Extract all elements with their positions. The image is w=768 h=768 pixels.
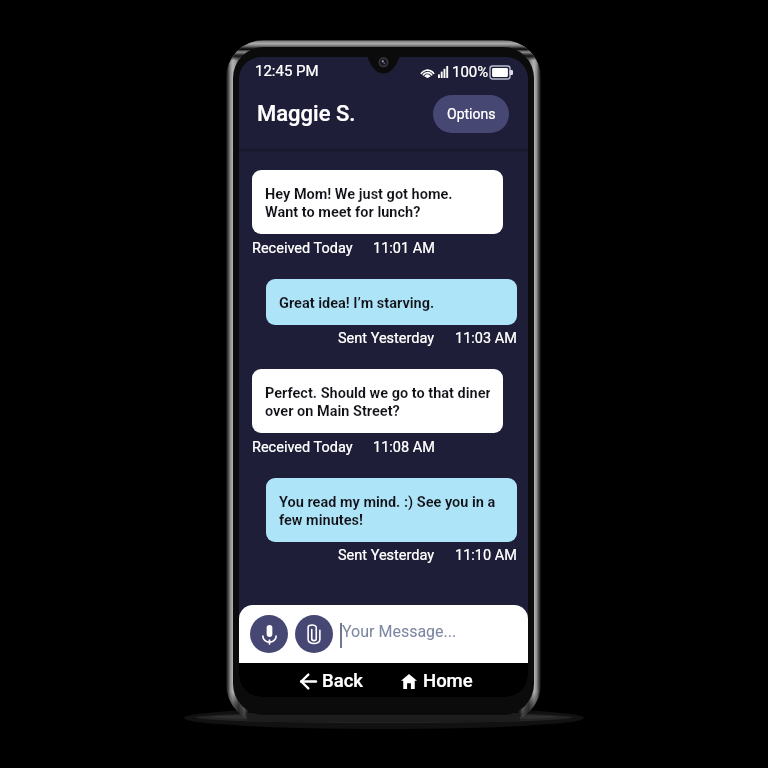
staticText: Home: [423, 670, 473, 692]
staticText: Sent Yesterday: [338, 330, 435, 347]
button[interactable]: Record voice message: [250, 615, 288, 653]
staticText: Options: [447, 106, 496, 122]
staticText: Back: [322, 670, 363, 692]
staticText: Perfect. Should we go to that diner over…: [265, 383, 490, 419]
staticText: 11:08 AM: [373, 439, 435, 456]
staticText: 11:03 AM: [455, 330, 517, 347]
staticText: 11:10 AM: [455, 547, 517, 564]
staticText: Hey Mom! We just got home. Want to meet …: [265, 184, 453, 220]
staticText: Maggie S.: [257, 101, 356, 127]
staticText: Your Message...: [342, 622, 457, 641]
staticText: 100%: [452, 63, 489, 81]
button[interactable]: Hey Mom! We just got home. Want to meet …: [252, 170, 503, 234]
staticText: You read my mind. :) See you in a few mi…: [279, 492, 496, 528]
button[interactable]: You read my mind. :) See you in a few mi…: [266, 478, 517, 542]
staticText: Received Today: [252, 240, 353, 257]
staticText: Received Today: [252, 439, 353, 456]
button[interactable]: Back: [294, 666, 369, 696]
staticText: Sent Yesterday: [338, 547, 435, 564]
button[interactable]: Perfect. Should we go to that diner over…: [252, 369, 503, 433]
staticText: 12:45 PM: [255, 62, 319, 80]
staticText: Great idea! I’m starving.: [279, 293, 435, 311]
button[interactable]: Home: [395, 666, 479, 696]
staticText: 11:01 AM: [373, 240, 435, 257]
button[interactable]: Attach file: [295, 615, 333, 653]
button[interactable]: Options: [433, 95, 509, 133]
button[interactable]: Great idea! I’m starving.: [266, 279, 517, 325]
